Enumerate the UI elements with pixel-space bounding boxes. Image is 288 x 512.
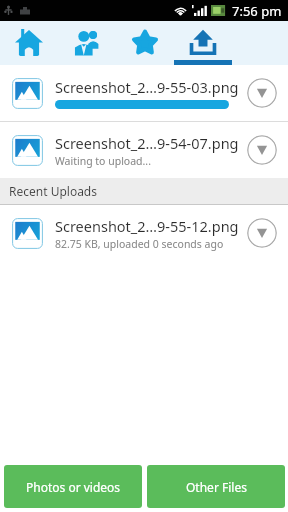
staticText: Photos or videos	[26, 479, 121, 495]
staticText: Recent Uploads	[9, 183, 97, 199]
button[interactable]: More options	[247, 218, 277, 248]
staticText: Screenshot_2…9-54-07.png	[55, 133, 239, 153]
button[interactable]: People	[58, 21, 116, 65]
button[interactable]: Screenshot_2…9-55-03.png	[0, 65, 288, 121]
staticText: Screenshot_2…9-55-12.png	[55, 216, 239, 236]
staticText: 7:56 pm	[232, 2, 282, 20]
button[interactable]: Favorites	[116, 21, 174, 65]
button[interactable]: Uploads	[174, 21, 232, 65]
button[interactable]: More options	[247, 78, 277, 108]
button[interactable]: Home	[0, 21, 58, 65]
staticText: Other Files	[186, 479, 247, 495]
button[interactable]: Photos or videos	[4, 465, 142, 508]
staticText: Waiting to upload...	[55, 154, 152, 168]
button[interactable]: More options	[247, 135, 277, 165]
button[interactable]: Other Files	[147, 465, 285, 508]
staticText: Screenshot_2…9-55-03.png	[55, 77, 239, 97]
button[interactable]: Screenshot_2…9-54-07.png	[0, 122, 288, 178]
button[interactable]: Screenshot_2…9-55-12.png	[0, 205, 288, 261]
staticText: 82.75 KB, uploaded 0 seconds ago	[55, 237, 224, 251]
